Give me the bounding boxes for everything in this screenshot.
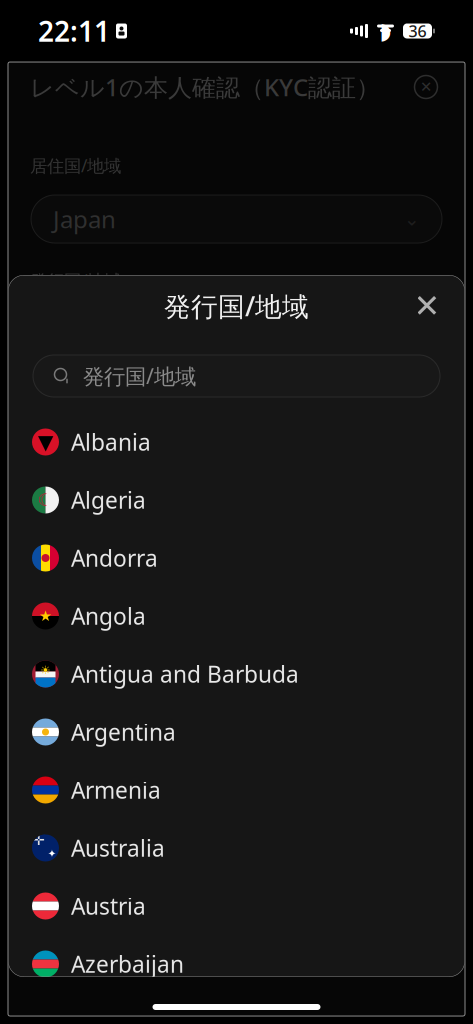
staticText: Argentina — [71, 717, 176, 747]
staticText: ◗ — [379, 18, 391, 44]
button[interactable]: Armenia — [8, 761, 465, 819]
staticText: ✦ — [47, 847, 56, 859]
staticText: ★ — [39, 608, 52, 624]
staticText: 発行国/地域 — [164, 288, 309, 324]
staticText: 居住国/地域 — [30, 154, 121, 177]
button[interactable]: ☾ — [8, 471, 465, 529]
staticText: ☾ — [37, 490, 53, 510]
button[interactable]: ★ — [8, 587, 465, 645]
staticText: ✕ — [413, 288, 440, 324]
button[interactable]: 発行国/地域 — [33, 355, 440, 397]
staticText: 発行国/地域 — [30, 269, 121, 292]
staticText: Angola — [71, 601, 146, 631]
button[interactable]: Andorra — [8, 529, 465, 587]
staticText: Andorra — [71, 543, 158, 573]
staticText: ✛ — [32, 832, 44, 848]
button[interactable]: ☀ — [8, 645, 465, 703]
staticText: Azerbaijan — [71, 949, 184, 979]
button[interactable]: ✦ — [8, 819, 465, 877]
staticText: Austria — [71, 891, 146, 921]
staticText: Japan — [53, 203, 116, 235]
button[interactable]: Argentina — [8, 703, 465, 761]
button[interactable]: Azerbaijan — [8, 935, 465, 993]
staticText: Antigua and Barbuda — [71, 659, 299, 689]
staticText: ⌄ — [404, 208, 420, 230]
staticText: 36 — [408, 20, 426, 42]
staticText: Algeria — [71, 485, 146, 515]
button[interactable]: 閉じる — [409, 70, 443, 104]
staticText: 発行国/地域 — [83, 362, 196, 390]
staticText: ☀ — [40, 663, 51, 677]
staticText: Armenia — [71, 775, 161, 805]
staticText: レベル1の本人確認（KYC認証） — [30, 71, 380, 103]
staticText: ✕ — [420, 79, 432, 95]
button[interactable]: Austria — [8, 877, 465, 935]
staticText: ▼ — [38, 431, 53, 453]
button[interactable]: Close — [405, 284, 449, 328]
staticText: Australia — [71, 833, 165, 863]
staticText: Albania — [71, 427, 151, 457]
button[interactable]: ▼ — [8, 413, 465, 471]
staticText: 22:11 — [38, 12, 110, 50]
